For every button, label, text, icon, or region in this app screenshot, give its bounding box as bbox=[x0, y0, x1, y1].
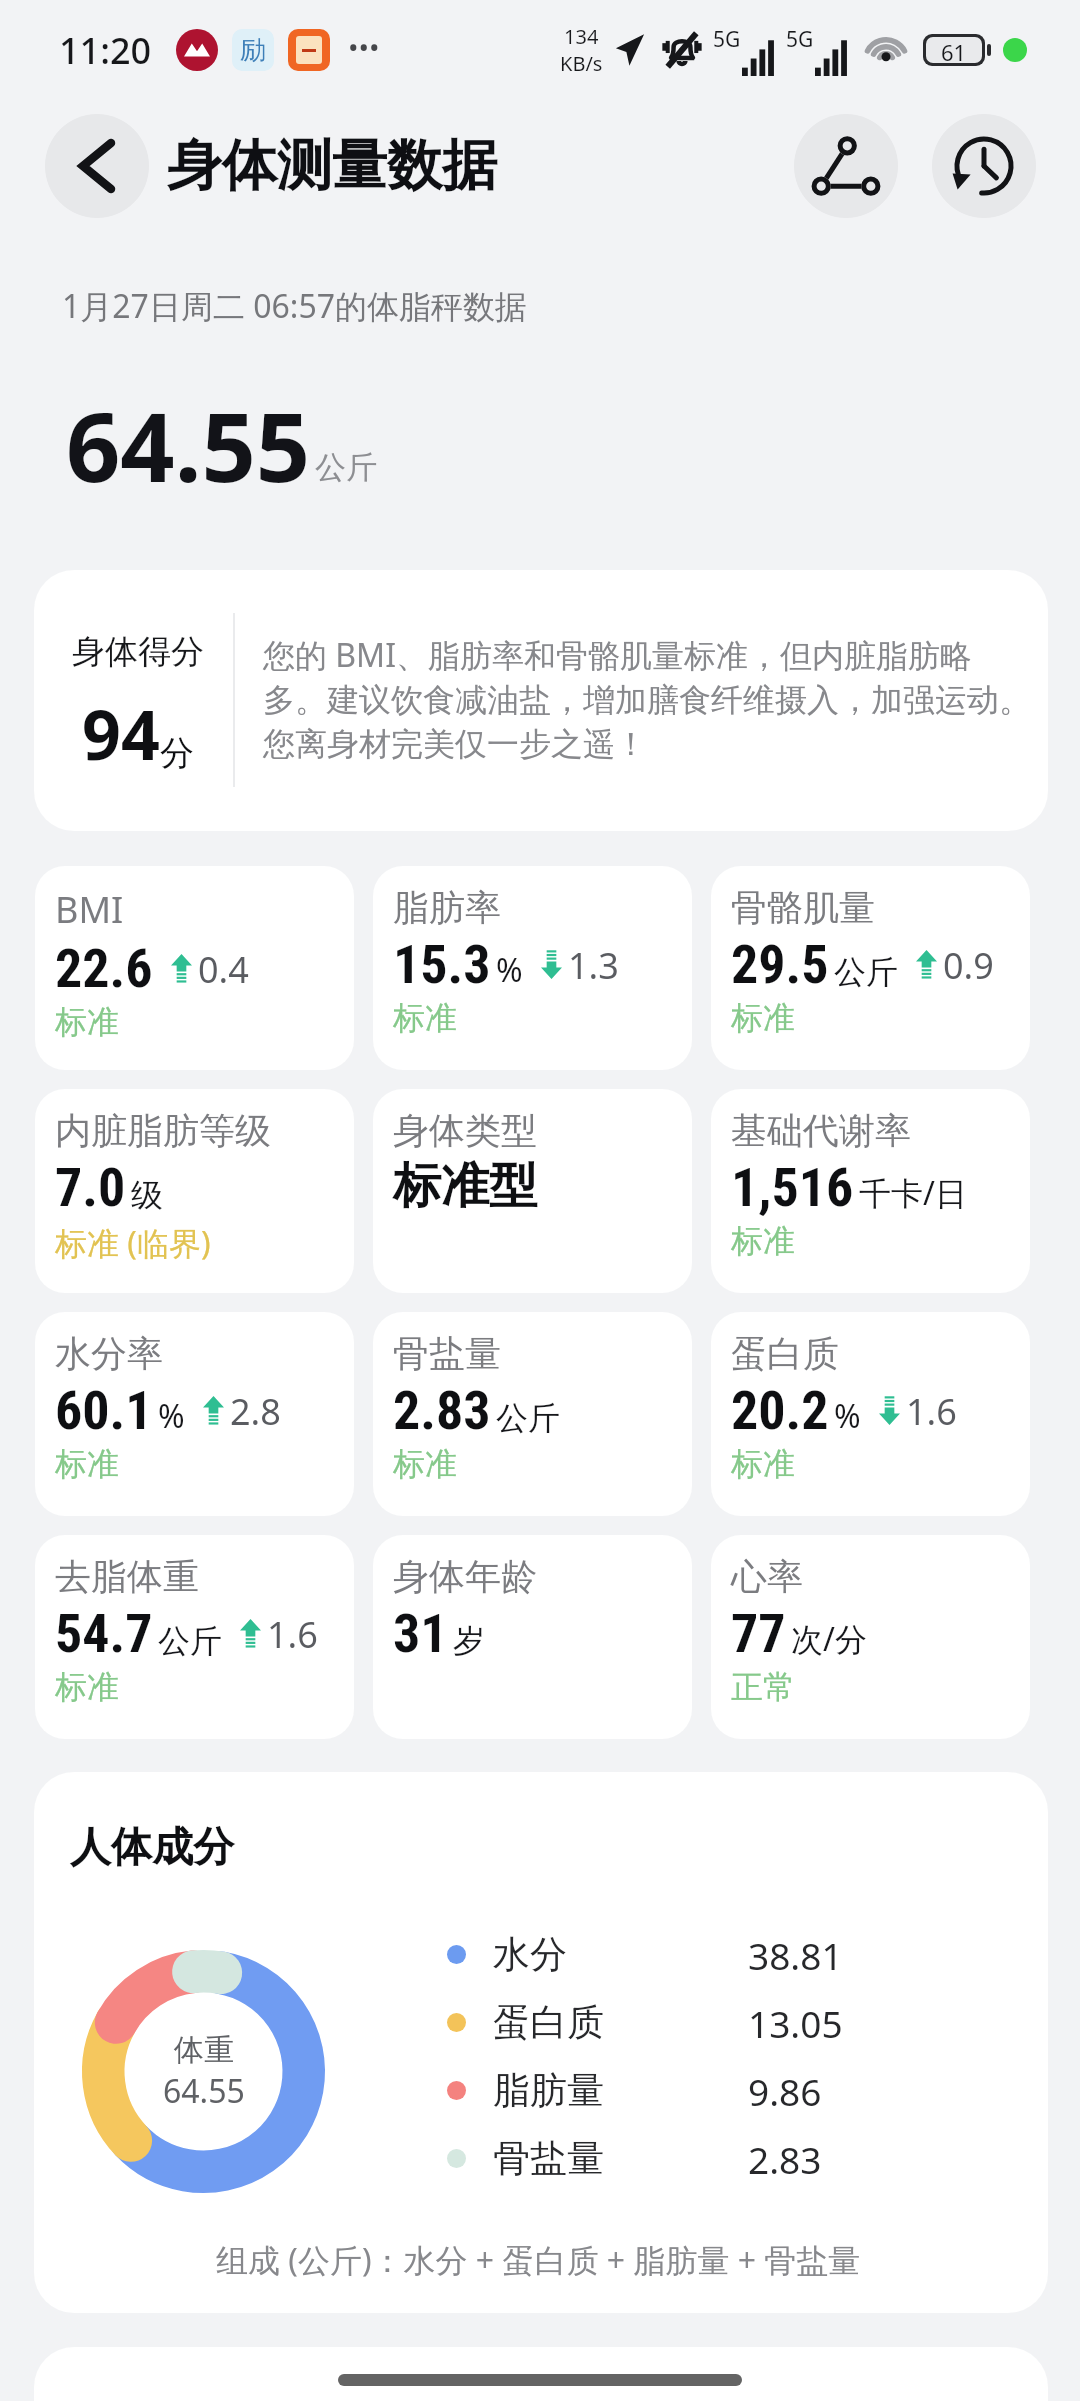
staticText: 骨盐量 bbox=[493, 2135, 748, 2182]
staticText: 人体成分 bbox=[70, 1822, 234, 1874]
staticText: 0.9 bbox=[943, 941, 994, 990]
button[interactable]: 内脏脂肪等级 bbox=[35, 1089, 354, 1293]
staticText: 11:20 bbox=[59, 26, 152, 75]
staticText: 组成 (公斤)：水分 + 蛋白质 + 脂肪量 + 骨盐量 bbox=[216, 2238, 861, 2282]
staticText: 60.1 bbox=[55, 1379, 153, 1442]
staticText: 标准 (临界) bbox=[55, 1221, 211, 1265]
button[interactable]: BMI bbox=[35, 866, 354, 1070]
staticText: 蛋白质 bbox=[493, 1999, 748, 2046]
staticText: 骨骼肌量 bbox=[731, 885, 875, 930]
button[interactable]: 脂肪率 bbox=[373, 866, 692, 1070]
staticText: 22.6 bbox=[55, 937, 153, 1000]
staticText: BMI bbox=[55, 885, 124, 934]
staticText: 基础代谢率 bbox=[731, 1108, 911, 1153]
button[interactable]: 心率 bbox=[711, 1535, 1030, 1739]
staticText: 公斤 bbox=[496, 1398, 560, 1438]
staticText: 身体类型 bbox=[393, 1108, 537, 1153]
staticText: 标准 bbox=[731, 1221, 795, 1261]
staticText: % bbox=[496, 948, 523, 992]
staticText: 1.3 bbox=[568, 941, 619, 990]
staticText: 公斤 bbox=[315, 448, 377, 487]
staticText: 标准 bbox=[393, 1444, 457, 1484]
staticText: 2.8 bbox=[230, 1387, 281, 1436]
staticText: 次/分 bbox=[791, 1617, 867, 1661]
staticText: 标准 bbox=[731, 998, 795, 1038]
staticText: 标准 bbox=[55, 1002, 119, 1042]
staticText: KB/s bbox=[560, 50, 603, 77]
staticText: 5G bbox=[786, 25, 814, 54]
staticText: 5G bbox=[713, 25, 741, 54]
button[interactable]: 历史记录 bbox=[932, 114, 1036, 218]
staticText: 13.05 bbox=[748, 1998, 843, 2046]
staticText: 7.0 bbox=[55, 1156, 126, 1219]
button[interactable]: 身体得分 bbox=[34, 570, 1048, 831]
staticText: 心率 bbox=[731, 1554, 803, 1599]
staticText: 1月27日周二 06:57的体脂秤数据 bbox=[62, 284, 528, 328]
staticText: 38.81 bbox=[748, 1930, 843, 1978]
button[interactable]: 人体成分 bbox=[34, 1772, 1048, 2313]
staticText: 1.6 bbox=[906, 1387, 957, 1436]
staticText: 1,516 bbox=[731, 1156, 854, 1219]
staticText: 千卡/日 bbox=[859, 1171, 967, 1215]
staticText: 您的 BMI、脂肪率和骨骼肌量标准，但内脏脂肪略 多。建议饮食减油盐，增加膳食纤… bbox=[263, 633, 1048, 764]
staticText: 公斤 bbox=[158, 1621, 222, 1661]
staticText: 0.4 bbox=[198, 945, 249, 994]
staticText: 级 bbox=[131, 1175, 163, 1215]
staticText: 骨盐量 bbox=[393, 1331, 501, 1376]
staticText: 2.83 bbox=[748, 2134, 822, 2182]
button[interactable]: 骨骼肌量 bbox=[711, 866, 1030, 1070]
staticText: 标准 bbox=[731, 1444, 795, 1484]
staticText: 脂肪率 bbox=[393, 885, 501, 930]
button[interactable]: 身体类型 bbox=[373, 1089, 692, 1293]
staticText: 体重 bbox=[174, 2031, 234, 2069]
staticText: 31 bbox=[393, 1602, 448, 1665]
staticText: 标准型 bbox=[393, 1156, 537, 1216]
button[interactable]: 去脂体重 bbox=[35, 1535, 354, 1739]
staticText: % bbox=[834, 1394, 861, 1438]
staticText: 20.2 bbox=[731, 1379, 829, 1442]
staticText: 内脏脂肪等级 bbox=[55, 1108, 271, 1153]
staticText: 脂肪量 bbox=[493, 2067, 748, 2114]
staticText: 身体测量数据 bbox=[167, 131, 497, 200]
button[interactable]: 蛋白质 bbox=[711, 1312, 1030, 1516]
staticText: 去脂体重 bbox=[55, 1554, 199, 1599]
staticText: 94 bbox=[82, 687, 160, 780]
staticText: 分 bbox=[160, 732, 194, 775]
staticText: 54.7 bbox=[55, 1602, 153, 1665]
staticText: 标准 bbox=[393, 998, 457, 1038]
button[interactable]: 身体年龄 bbox=[373, 1535, 692, 1739]
staticText: 64.55 bbox=[66, 380, 311, 509]
staticText: 1.6 bbox=[267, 1610, 318, 1659]
staticText: 蛋白质 bbox=[731, 1331, 839, 1376]
staticText: ••• bbox=[348, 28, 380, 66]
staticText: 9.86 bbox=[748, 2066, 822, 2114]
button[interactable]: 分享 bbox=[794, 114, 898, 218]
staticText: 标准 bbox=[55, 1667, 119, 1707]
staticText: 77 bbox=[731, 1602, 786, 1665]
staticText: 134 bbox=[564, 23, 599, 50]
staticText: 公斤 bbox=[834, 952, 898, 992]
staticText: 15.3 bbox=[393, 933, 491, 996]
staticText: % bbox=[158, 1394, 185, 1438]
staticText: 水分 bbox=[493, 1931, 748, 1978]
button[interactable]: 返回 bbox=[45, 114, 149, 218]
button[interactable]: 水分率 bbox=[35, 1312, 354, 1516]
staticText: 身体得分 bbox=[72, 631, 204, 673]
staticText: 岁 bbox=[453, 1621, 485, 1661]
staticText: 64.55 bbox=[163, 2069, 245, 2113]
staticText: 身体年龄 bbox=[393, 1554, 537, 1599]
staticText: 正常 bbox=[731, 1667, 795, 1707]
staticText: 2.83 bbox=[393, 1379, 491, 1442]
staticText: 29.5 bbox=[731, 933, 829, 996]
button[interactable]: 基础代谢率 bbox=[711, 1089, 1030, 1293]
staticText: 61 bbox=[941, 37, 967, 63]
button[interactable]: 骨盐量 bbox=[373, 1312, 692, 1516]
staticText: 励 bbox=[240, 34, 266, 67]
staticText: 标准 bbox=[55, 1444, 119, 1484]
staticText: 水分率 bbox=[55, 1331, 163, 1376]
